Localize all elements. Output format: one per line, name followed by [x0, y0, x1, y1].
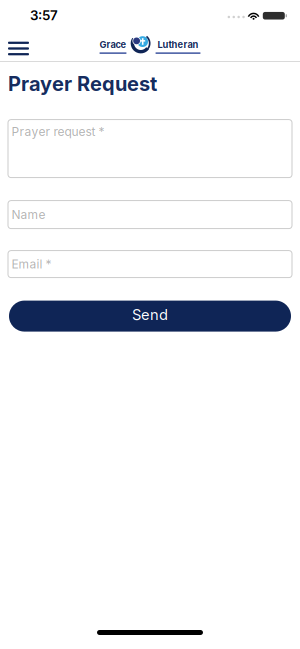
staticText: Grace [99, 39, 126, 50]
staticText: Prayer request * [11, 125, 104, 139]
staticText: Prayer Request [8, 72, 157, 96]
button[interactable]: Menu [0, 31, 29, 58]
button[interactable]: Prayer request * [8, 120, 292, 178]
button[interactable]: Send [9, 301, 291, 332]
button[interactable]: Name [8, 201, 292, 229]
staticText: Name [11, 207, 45, 222]
staticText: Lutheran [157, 39, 198, 50]
staticText: Email * [11, 257, 51, 271]
staticText: 3:57 [30, 8, 58, 23]
button[interactable]: Email * [8, 251, 292, 278]
staticText: Send [132, 306, 168, 323]
